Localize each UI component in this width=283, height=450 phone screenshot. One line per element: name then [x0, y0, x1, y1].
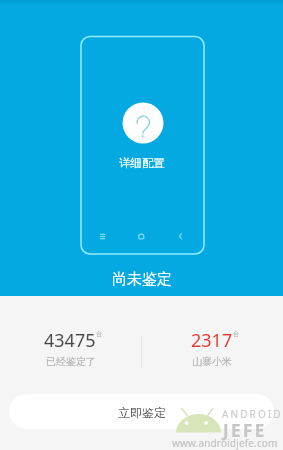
staticText: 43475: [44, 328, 96, 353]
button[interactable]: 立即鉴定: [9, 394, 274, 429]
staticText: 已经鉴定了: [46, 355, 96, 368]
staticText: ANDROID: [222, 407, 283, 421]
button[interactable]: Home: [132, 228, 150, 245]
staticText: 山寨小米: [192, 355, 232, 368]
staticText: www.androidjefe.com: [172, 436, 278, 450]
staticText: 台: [96, 330, 103, 338]
staticText: 台: [233, 330, 240, 338]
staticText: 立即鉴定: [118, 405, 166, 420]
staticText: 详细配置: [119, 156, 165, 170]
button[interactable]: Back: [172, 228, 189, 245]
staticText: 尚未鉴定: [112, 270, 172, 289]
button[interactable]: Menu: [93, 228, 112, 245]
staticText: JEFE: [223, 419, 267, 442]
staticText: 2317: [191, 328, 233, 353]
